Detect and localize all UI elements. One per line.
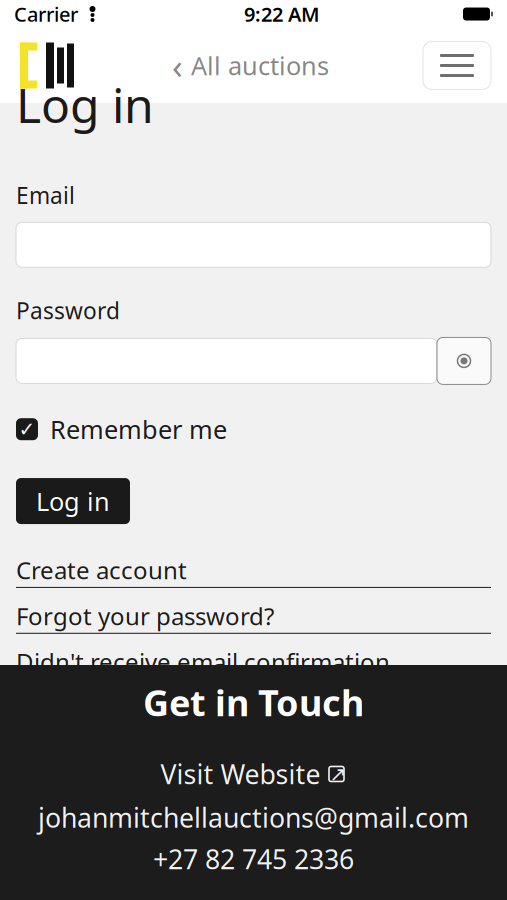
- button[interactable]: Log in: [16, 478, 130, 524]
- staticText: Password: [16, 295, 120, 325]
- staticText: Get in Touch: [143, 678, 364, 726]
- button[interactable]: ‹: [166, 34, 335, 96]
- button[interactable]: Home: [16, 36, 78, 94]
- staticText: johanmitchellauctions@gmail.com: [38, 800, 469, 835]
- staticText: Remember me: [50, 412, 227, 446]
- staticText: +27 82 745 2336: [153, 841, 354, 876]
- staticText: Log in: [36, 484, 110, 518]
- staticText: Didn't receive email confirmation instru…: [16, 646, 390, 709]
- button[interactable]: Didn't receive email confirmation instru…: [16, 646, 491, 711]
- button[interactable]: Create account: [16, 554, 491, 588]
- staticText: Create account: [16, 554, 187, 586]
- staticText: All auctions: [191, 49, 329, 82]
- button[interactable]: ✓: [16, 408, 227, 450]
- staticText: 9:22 AM: [244, 1, 320, 27]
- staticText: Visit Website: [160, 756, 320, 792]
- staticText: ↗: [329, 763, 346, 785]
- staticText: ‹: [172, 42, 183, 88]
- staticText: Email: [16, 180, 75, 210]
- staticText: ✓: [18, 418, 35, 441]
- button[interactable]: Show password: [437, 337, 491, 384]
- button[interactable]: Visit Website: [160, 754, 346, 794]
- staticText: Forgot your password?: [16, 600, 274, 632]
- button[interactable]: Menu: [423, 41, 491, 89]
- staticText: Carrier: [14, 1, 78, 27]
- button[interactable]: Forgot your password?: [16, 600, 491, 634]
- staticText: Log in: [16, 72, 154, 136]
